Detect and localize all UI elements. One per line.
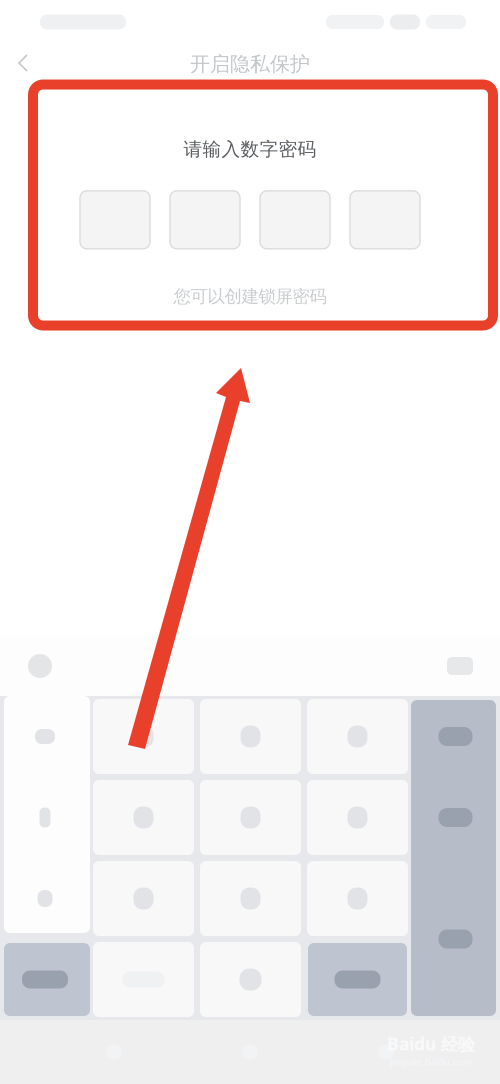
staticText: 开启隐私保护 bbox=[190, 52, 310, 76]
button[interactable]: Comma key bbox=[0, 696, 90, 777]
button[interactable]: Keyboard key bbox=[90, 696, 197, 777]
staticText: Baidu 经验 bbox=[387, 1032, 475, 1055]
button[interactable]: Hide keyboard bbox=[438, 636, 482, 696]
button[interactable]: Back bbox=[0, 44, 46, 84]
button[interactable]: 您可以创建锁屏密码 bbox=[161, 281, 338, 312]
button[interactable]: Keyboard key bbox=[304, 777, 411, 858]
button[interactable]: Keyboard key bbox=[304, 696, 411, 777]
button[interactable]: Symbol key bbox=[0, 777, 90, 858]
button[interactable]: Keyboard key bbox=[197, 939, 304, 1020]
button[interactable]: Symbol key bbox=[0, 858, 90, 939]
button[interactable]: Backspace bbox=[411, 696, 500, 777]
button[interactable]: Return bbox=[411, 858, 500, 1020]
button[interactable]: Keyboard key bbox=[197, 696, 304, 777]
button[interactable]: Keyboard key bbox=[90, 939, 197, 1020]
button[interactable]: Keyboard key bbox=[197, 777, 304, 858]
button[interactable]: Keyboard key bbox=[197, 858, 304, 939]
button[interactable]: Input method settings bbox=[18, 636, 62, 696]
staticText: 您可以创建锁屏密码 bbox=[173, 286, 326, 307]
staticText: 请输入数字密码 bbox=[183, 138, 316, 161]
button[interactable]: Switch input mode bbox=[0, 939, 90, 1020]
button[interactable]: Keyboard key bbox=[304, 939, 411, 1020]
button[interactable]: Keyboard key bbox=[90, 777, 197, 858]
button[interactable]: Keyboard key bbox=[304, 858, 411, 939]
button[interactable]: Keyboard key bbox=[90, 858, 197, 939]
button[interactable]: Symbols bbox=[411, 777, 500, 858]
